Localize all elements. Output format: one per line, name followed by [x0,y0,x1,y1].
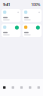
button[interactable] [1,9,20,22]
button[interactable]: Tab [0,79,9,96]
button[interactable] [1,24,20,37]
staticText: 9:41 [3,2,10,7]
button[interactable]: Tab [17,79,26,96]
staticText: 100% [31,2,40,7]
button[interactable]: Tab [26,79,34,96]
button[interactable]: Tab [9,79,17,96]
button[interactable] [22,9,41,22]
button[interactable]: Tab [34,79,43,96]
button[interactable] [22,24,41,37]
